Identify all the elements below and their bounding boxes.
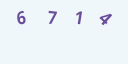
- staticText: 6: [15, 4, 28, 30]
- staticText: 4: [93, 5, 118, 31]
- staticText: 1: [73, 4, 86, 31]
- staticText: 7: [46, 5, 59, 30]
